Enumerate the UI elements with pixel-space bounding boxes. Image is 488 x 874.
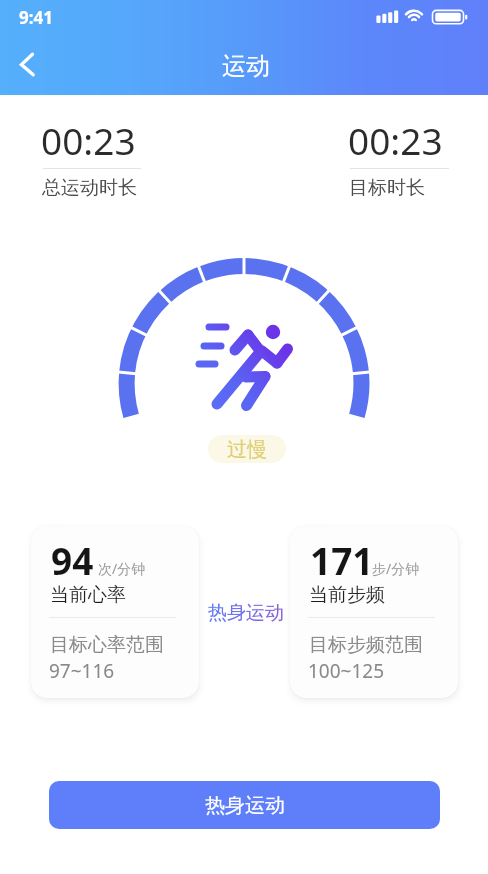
staticText: 运动: [222, 51, 270, 81]
staticText: 100~125: [308, 658, 385, 684]
staticText: 次/分钟: [98, 559, 146, 578]
staticText: 热身运动: [208, 601, 284, 625]
staticText: 目标时长: [349, 176, 425, 200]
staticText: 目标步频范围: [309, 633, 423, 657]
staticText: 当前心率: [50, 583, 126, 607]
button[interactable]: 热身运动: [49, 781, 440, 829]
staticText: 总运动时长: [42, 176, 137, 200]
staticText: 00:23: [41, 115, 136, 165]
staticText: 94: [51, 535, 94, 585]
button[interactable]: Back: [5, 42, 49, 86]
staticText: 9:41: [19, 6, 53, 29]
button[interactable]: 94: [31, 526, 199, 698]
staticText: 步/分钟: [372, 559, 420, 578]
staticText: 当前步频: [309, 583, 385, 607]
staticText: 热身运动: [205, 793, 285, 818]
staticText: 过慢: [227, 437, 267, 462]
staticText: 00:23: [348, 115, 443, 165]
staticText: 97~116: [49, 658, 115, 684]
staticText: 171: [310, 535, 374, 585]
button[interactable]: 171: [290, 526, 458, 698]
button[interactable]: 过慢: [208, 435, 286, 463]
staticText: 目标心率范围: [50, 633, 164, 657]
